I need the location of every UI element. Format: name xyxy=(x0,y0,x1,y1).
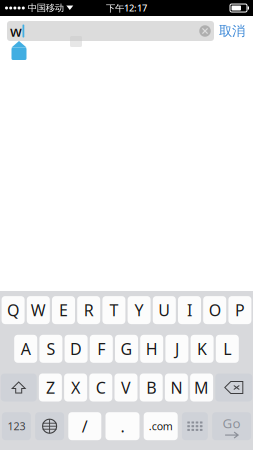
staticText: P xyxy=(235,299,245,321)
button[interactable]: X xyxy=(64,373,87,401)
staticText: V xyxy=(121,377,131,398)
button[interactable]: 取消 xyxy=(214,21,250,41)
staticText: 中国移动 xyxy=(28,2,64,14)
staticText: J xyxy=(175,338,179,359)
button[interactable]: C xyxy=(89,373,112,401)
staticText: . xyxy=(120,416,124,437)
staticText: L xyxy=(223,338,231,359)
button[interactable]: . xyxy=(105,412,139,440)
staticText: D xyxy=(70,338,82,359)
button[interactable]: Delete xyxy=(215,373,252,401)
button[interactable]: D xyxy=(65,335,88,363)
staticText: G xyxy=(120,338,132,359)
staticText: K xyxy=(197,338,207,359)
button[interactable]: E xyxy=(52,296,75,324)
staticText: Z xyxy=(46,377,55,398)
button[interactable]: Go xyxy=(212,412,251,440)
button[interactable]: O xyxy=(203,296,226,324)
button[interactable]: Clear text xyxy=(197,23,213,39)
staticText: Go xyxy=(223,414,241,432)
button[interactable]: B xyxy=(140,373,163,401)
button[interactable]: Shift xyxy=(1,373,37,401)
staticText: T xyxy=(109,299,118,321)
staticText: U xyxy=(158,299,170,321)
staticText: I xyxy=(187,299,192,321)
button[interactable]: R xyxy=(77,296,100,324)
staticText: B xyxy=(146,377,156,398)
button[interactable]: U xyxy=(153,296,176,324)
staticText: O xyxy=(209,299,221,321)
staticText: W xyxy=(31,299,46,321)
button[interactable]: L xyxy=(216,335,239,363)
staticText: / xyxy=(82,416,88,437)
button[interactable]: K xyxy=(191,335,214,363)
button[interactable]: Z xyxy=(39,373,62,401)
staticText: w xyxy=(10,21,22,41)
button[interactable]: Y xyxy=(128,296,151,324)
staticText: 123 xyxy=(7,419,25,433)
button[interactable]: N xyxy=(165,373,188,401)
staticText: M xyxy=(194,377,209,398)
staticText: F xyxy=(97,338,105,359)
button[interactable]: J xyxy=(165,335,188,363)
staticText: N xyxy=(170,377,182,398)
staticText: Q xyxy=(7,299,19,321)
button[interactable]: I xyxy=(178,296,201,324)
staticText: X xyxy=(71,377,80,398)
staticText: E xyxy=(59,299,68,321)
button[interactable]: A xyxy=(14,335,37,363)
button[interactable]: T xyxy=(102,296,125,324)
button[interactable]: G xyxy=(115,335,138,363)
staticText: A xyxy=(21,338,31,359)
staticText: 取消 xyxy=(219,23,245,39)
staticText: .com xyxy=(149,419,173,433)
button[interactable]: .com xyxy=(144,412,178,440)
button[interactable]: V xyxy=(114,373,137,401)
button[interactable]: H xyxy=(140,335,163,363)
staticText: H xyxy=(146,338,158,359)
button[interactable]: Next keyboard xyxy=(35,412,64,440)
button[interactable]: P xyxy=(228,296,251,324)
button[interactable]: Q xyxy=(2,296,25,324)
staticText: S xyxy=(46,338,55,359)
button[interactable]: M xyxy=(190,373,213,401)
button[interactable]: / xyxy=(68,412,101,440)
button[interactable]: F xyxy=(90,335,113,363)
button[interactable]: 123 xyxy=(2,412,31,440)
staticText: C xyxy=(96,377,106,398)
staticText: R xyxy=(84,299,94,321)
staticText: Y xyxy=(135,299,144,321)
button[interactable]: W xyxy=(27,296,50,324)
button[interactable]: S xyxy=(39,335,62,363)
staticText: 下午12:17 xyxy=(106,2,147,14)
button[interactable]: Hide keyboard xyxy=(182,412,208,440)
